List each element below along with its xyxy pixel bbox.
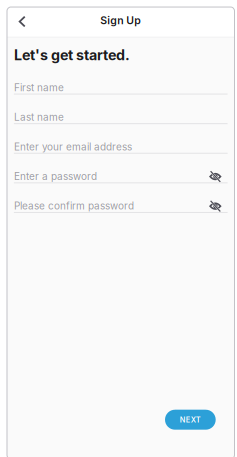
- staticText: Let's get started.: [14, 46, 130, 64]
- button[interactable]: Show Please confirm password: [207, 199, 223, 212]
- staticText: Sign Up: [100, 14, 141, 27]
- staticText: First name: [14, 81, 64, 94]
- button[interactable]: Show Enter a password: [207, 170, 223, 183]
- staticText: Enter a password: [14, 170, 97, 182]
- button[interactable]: Back: [7, 10, 31, 32]
- staticText: Please confirm password: [14, 200, 134, 212]
- button[interactable]: NEXT: [165, 410, 216, 430]
- staticText: Last name: [14, 111, 64, 123]
- staticText: Enter your email address: [14, 141, 132, 153]
- staticText: NEXT: [180, 415, 201, 424]
